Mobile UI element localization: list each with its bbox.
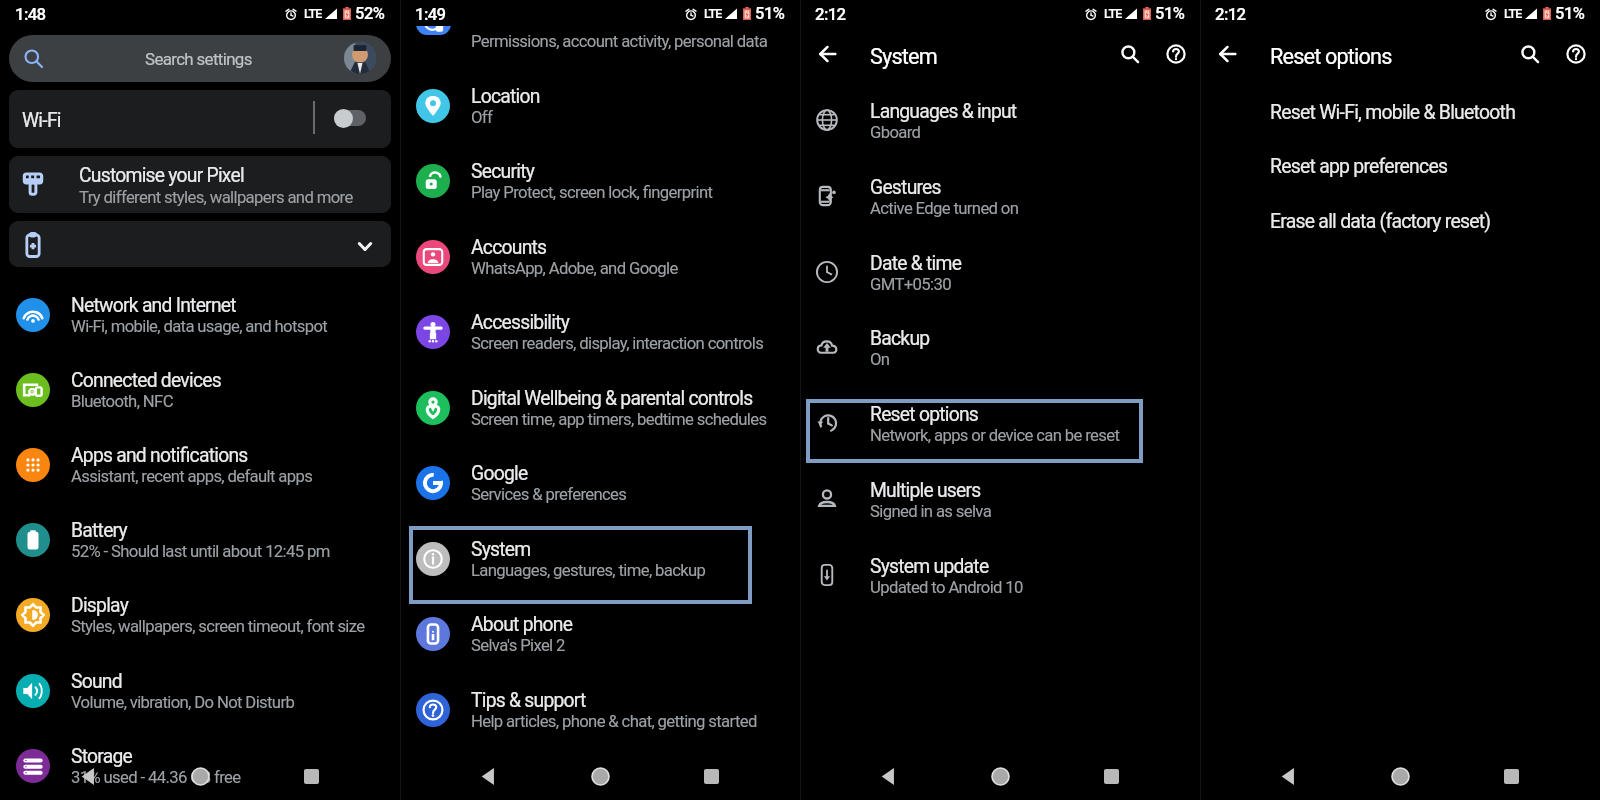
button[interactable]: System (400, 521, 800, 596)
staticText: Screen readers, display, interaction con… (471, 334, 764, 354)
button[interactable]: Gestures (800, 158, 1200, 234)
button[interactable]: About phone (400, 596, 800, 671)
button[interactable]: Home (183, 759, 217, 793)
staticText: 51% (755, 4, 785, 23)
staticText: 1:48 (15, 4, 46, 24)
staticText: Wi-Fi (22, 109, 61, 132)
staticText: Gboard (870, 123, 921, 143)
button[interactable]: Home (983, 759, 1017, 793)
staticText: Search settings (145, 49, 252, 69)
staticText: Reset options (870, 403, 979, 426)
staticText: 2:12 (815, 4, 846, 24)
button[interactable]: Back (871, 759, 905, 793)
button[interactable]: Languages & input (800, 82, 1200, 158)
staticText: Backup (870, 327, 930, 350)
button[interactable]: Accessibility (400, 294, 800, 369)
button[interactable] (9, 221, 391, 267)
button[interactable]: Search (1513, 37, 1547, 71)
staticText: Network, apps or device can be reset (870, 426, 1120, 446)
button[interactable]: Customise your Pixel (9, 156, 391, 213)
button[interactable]: Tips & support (400, 672, 800, 747)
button[interactable]: Network and Internet (0, 277, 400, 352)
staticText: Reset app preferences (1270, 155, 1448, 178)
button[interactable]: Erase all data (factory reset) (1200, 196, 1600, 250)
staticText: On (870, 350, 890, 370)
staticText: Accessibility (471, 311, 570, 334)
button[interactable]: Navigate up (1210, 37, 1244, 71)
button[interactable]: Home (583, 759, 617, 793)
staticText: Updated to Android 10 (870, 578, 1023, 598)
button[interactable]: Display (0, 577, 400, 652)
staticText: Help articles, phone & chat, getting sta… (471, 712, 757, 732)
staticText: Languages & input (870, 100, 1017, 123)
button[interactable]: Help (1559, 37, 1593, 71)
button[interactable]: Help (1159, 37, 1193, 71)
button[interactable]: Google (400, 445, 800, 520)
staticText: Selva's Pixel 2 (471, 636, 565, 656)
button[interactable]: Recents (1094, 759, 1128, 793)
staticText: Battery (71, 519, 127, 542)
button[interactable]: Battery (0, 502, 400, 577)
staticText: Apps and notifications (71, 444, 248, 467)
staticText: Google (471, 462, 528, 485)
button[interactable]: Sound (0, 653, 400, 728)
staticText: Digital Wellbeing & parental controls (471, 387, 753, 410)
button[interactable]: Apps and notifications (0, 427, 400, 502)
button[interactable]: Home (1383, 759, 1417, 793)
button[interactable]: Location (400, 68, 800, 143)
staticText: About phone (471, 613, 573, 636)
staticText: Signed in as selva (870, 502, 992, 522)
button[interactable]: Date & time (800, 234, 1200, 310)
staticText: Wi-Fi, mobile, data usage, and hotspot (71, 317, 328, 337)
staticText: LTE (1504, 6, 1522, 21)
staticText: Security (471, 160, 535, 183)
button[interactable]: Back (71, 759, 105, 793)
staticText: Multiple users (870, 479, 981, 502)
button[interactable]: Digital Wellbeing & parental controls (400, 370, 800, 445)
staticText: 1:49 (415, 4, 446, 24)
button[interactable]: System update (800, 537, 1200, 613)
button[interactable]: Security (400, 143, 800, 218)
staticText: Location (471, 85, 540, 108)
button[interactable]: Recents (1494, 759, 1528, 793)
staticText: Languages, gestures, time, backup (471, 561, 706, 581)
staticText: Try different styles, wallpapers and mor… (79, 188, 353, 208)
button[interactable]: Reset options (800, 385, 1200, 461)
staticText: WhatsApp, Adobe, and Google (471, 259, 678, 279)
staticText: Screen time, app timers, bedtime schedul… (471, 410, 767, 430)
staticText: 31% used - 44.36 GB free (71, 768, 241, 788)
button[interactable]: Search (1113, 37, 1147, 71)
button[interactable]: Back (1271, 759, 1305, 793)
staticText: System (471, 538, 531, 561)
staticText: 51% (1555, 4, 1585, 23)
button[interactable]: Back (471, 759, 505, 793)
button[interactable]: Search settings (9, 35, 391, 82)
staticText: 52% (355, 4, 385, 23)
staticText: Connected devices (71, 369, 221, 392)
staticText: Off (471, 108, 493, 128)
staticText: System update (870, 555, 989, 578)
staticText: Display (71, 594, 129, 617)
button[interactable]: Recents (294, 759, 328, 793)
staticText: Gestures (870, 176, 941, 199)
button[interactable]: Reset Wi-Fi, mobile & Bluetooth (1200, 87, 1600, 141)
staticText: Bluetooth, NFC (71, 392, 173, 412)
staticText: 2:12 (1215, 4, 1246, 24)
button[interactable]: Wi-Fi (9, 90, 391, 148)
staticText: Styles, wallpapers, screen timeout, font… (71, 617, 365, 637)
staticText: LTE (704, 6, 722, 21)
button[interactable]: Navigate up (810, 37, 844, 71)
button[interactable]: Accounts (400, 219, 800, 294)
staticText: Permissions, account activity, personal … (471, 32, 768, 52)
staticText: Tips & support (471, 689, 586, 712)
button[interactable]: Reset app preferences (1200, 141, 1600, 195)
button[interactable]: Storage (0, 728, 400, 800)
staticText: LTE (304, 6, 322, 21)
staticText: Volume, vibration, Do Not Disturb (71, 693, 295, 713)
button[interactable]: Multiple users (800, 461, 1200, 537)
staticText: Sound (71, 670, 122, 693)
button[interactable]: Backup (800, 309, 1200, 385)
button[interactable]: Connected devices (0, 352, 400, 427)
staticText: Customise your Pixel (79, 164, 244, 187)
button[interactable]: Recents (694, 759, 728, 793)
